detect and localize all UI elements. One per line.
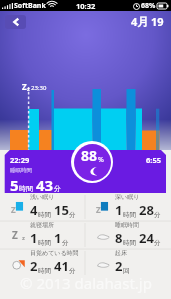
staticText: 22:29 — [10, 155, 30, 165]
staticText: 睡眠時間 — [115, 221, 139, 229]
staticText: 回 — [123, 267, 130, 275]
button[interactable]: 目覚めている時間 — [0, 249, 85, 277]
staticText: 深い眠り — [115, 193, 140, 201]
staticText: 4 — [30, 201, 38, 219]
staticText: 時間 — [38, 239, 51, 247]
staticText: 分 — [62, 239, 69, 247]
staticText: 68% — [141, 1, 156, 11]
staticText: 5 — [10, 175, 19, 193]
button[interactable]: Z — [85, 193, 171, 221]
staticText: 分 — [69, 267, 76, 275]
staticText: 時間 — [19, 184, 33, 193]
staticText: z — [27, 85, 30, 92]
staticText: % — [98, 155, 104, 165]
staticText: 43 — [36, 175, 54, 193]
staticText: Z — [12, 228, 18, 242]
staticText: 2 — [115, 257, 123, 275]
staticText: 目覚めている時間 — [30, 249, 79, 257]
staticText: 88 — [81, 146, 98, 165]
button[interactable]: Z — [0, 193, 85, 221]
staticText: 19 — [151, 14, 164, 29]
staticText: 6:55 — [146, 155, 161, 165]
staticText: 24 — [139, 229, 154, 247]
staticText: 分 — [54, 184, 61, 193]
staticText: 1 — [30, 229, 38, 247]
staticText: 4月 — [131, 14, 149, 29]
staticText: 8 — [115, 229, 123, 247]
staticText: 起床 — [115, 249, 127, 257]
staticText: 2 — [30, 257, 38, 275]
button[interactable]: Back — [5, 15, 26, 29]
staticText: 10:32 — [76, 1, 96, 11]
staticText: SoftBank — [14, 1, 46, 11]
staticText: 1 — [54, 229, 62, 247]
staticText: 就寝場所 — [30, 221, 54, 229]
staticText: 睡眠時間 — [10, 167, 32, 174]
button[interactable]: 起床 — [85, 249, 171, 277]
staticText: 23:30 — [31, 84, 47, 92]
staticText: 分 — [154, 211, 161, 219]
staticText: Z — [96, 204, 101, 215]
staticText: 分 — [69, 211, 76, 219]
staticText: Z — [22, 81, 27, 92]
staticText: 時間 — [123, 211, 136, 219]
staticText: z — [22, 234, 25, 242]
staticText: © 2013 dalahast.jp — [20, 273, 152, 293]
staticText: 浅い眠り — [30, 193, 55, 201]
button[interactable]: Z — [0, 221, 85, 249]
staticText: 15 — [54, 201, 69, 219]
staticText: Z — [11, 204, 16, 215]
staticText: 分 — [154, 239, 161, 247]
staticText: 41 — [54, 257, 69, 275]
staticText: 時間 — [38, 211, 51, 219]
button[interactable]: 睡眠時間 — [85, 221, 171, 249]
staticText: 1 — [115, 201, 123, 219]
staticText: 時間 — [38, 267, 51, 275]
staticText: 28 — [139, 201, 154, 219]
staticText: 時間 — [123, 239, 136, 247]
